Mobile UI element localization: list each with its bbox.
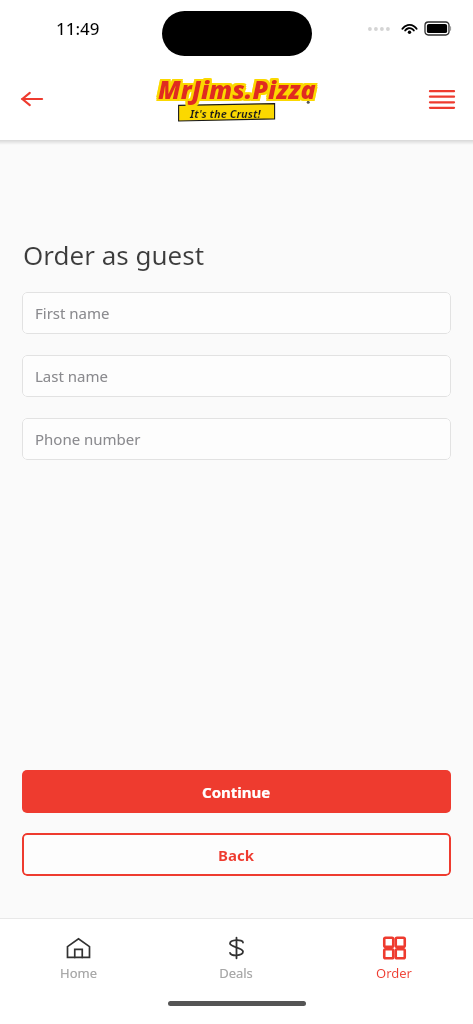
staticText: Back — [218, 845, 255, 865]
button[interactable]: Back — [22, 833, 451, 876]
staticText: First name — [35, 303, 110, 323]
staticText: MrJims.Pizza — [158, 70, 316, 104]
staticText: MrJims.Pizza — [156, 72, 314, 106]
staticText: 11:49 — [56, 17, 100, 40]
staticText: Phone number — [35, 429, 141, 449]
staticText: Last name — [35, 366, 108, 386]
button[interactable]: Continue — [22, 770, 451, 813]
staticText: MrJims.Pizza — [156, 70, 314, 104]
staticText: Continue — [202, 782, 271, 802]
staticText: Order — [376, 964, 412, 982]
button[interactable]: Home — [0, 919, 157, 1001]
staticText: Deals — [219, 964, 253, 982]
button[interactable]: First name — [22, 292, 451, 334]
staticText: Order as guest — [23, 237, 205, 272]
staticText: Home — [60, 964, 97, 982]
button[interactable]: Last name — [22, 355, 451, 397]
button[interactable]: Back — [10, 77, 54, 121]
button[interactable]: Menu — [420, 77, 464, 121]
button[interactable]: Deals — [157, 919, 315, 1001]
staticText: MrJims.Pizza — [160, 70, 318, 104]
staticText: MrJims.Pizza — [158, 74, 316, 108]
staticText: MrJims.Pizza — [156, 74, 314, 108]
button[interactable]: Phone number — [22, 418, 451, 460]
staticText: MrJims.Pizza — [160, 72, 318, 106]
staticText: MrJims.Pizza — [160, 74, 318, 108]
staticText: MrJims.Pizza — [158, 72, 316, 106]
staticText: It's the Crust! — [190, 106, 261, 121]
button[interactable]: Order — [315, 919, 473, 1001]
